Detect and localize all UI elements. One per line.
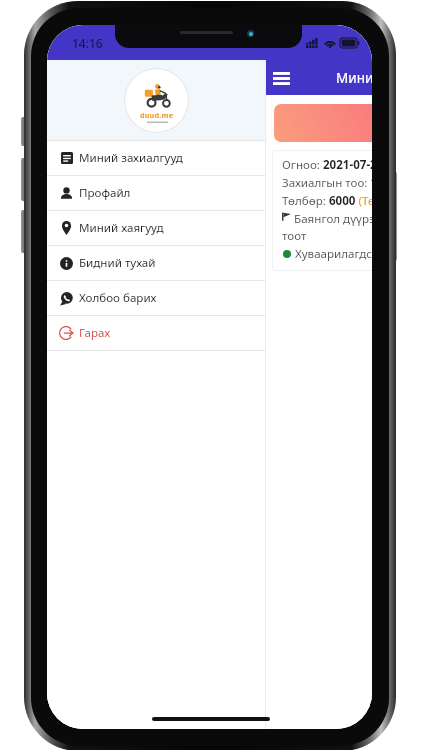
button[interactable]: Холбоо барих (47, 281, 266, 315)
staticText: Миний хаягууд (79, 220, 164, 236)
button[interactable]: Миний хаягууд (47, 211, 266, 245)
staticText: Хуваарилагдсан (295, 246, 372, 262)
staticText: Баянгол дүүрэг 4 хороо 40 байр 21 (282, 211, 372, 227)
button[interactable]: Open navigation menu (266, 63, 296, 93)
staticText: Холбоо барих (79, 290, 157, 306)
button[interactable]: Бидний тухай (47, 246, 266, 280)
staticText: тоот (282, 228, 307, 244)
staticText: Гарах (79, 325, 111, 341)
button[interactable]: Огноо: 2021-07-29 13:18 (272, 150, 372, 271)
staticText: Захиалгын тоо: 1 (282, 175, 372, 191)
button[interactable]: Профайл (47, 176, 266, 210)
staticText: Миний захиалгууд (336, 69, 372, 87)
staticText: Профайл (79, 185, 131, 201)
staticText: Огноо: 2021-07-29 13:18 (282, 157, 372, 173)
button[interactable]: Гарах (47, 316, 266, 350)
staticText: duud.me (140, 110, 174, 120)
staticText: Төлбөр: 6000 (Телефон) (282, 193, 372, 209)
staticText: Бидний тухай (79, 255, 156, 271)
staticText: Миний захиалгууд (79, 150, 183, 166)
staticText: 14:16 (72, 35, 103, 51)
button[interactable]: Миний захиалгууд (47, 141, 266, 175)
button[interactable] (274, 104, 372, 142)
